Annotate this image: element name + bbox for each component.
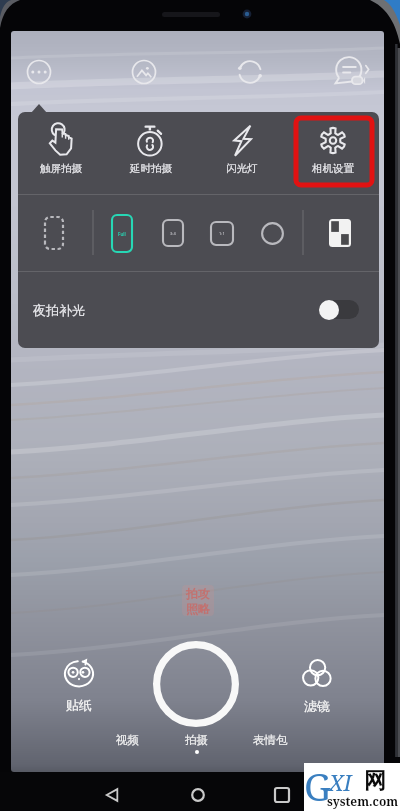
button[interactable]: Wide ratio xyxy=(43,215,65,251)
button[interactable]: 拍摄 xyxy=(162,733,230,761)
staticText: 拍摄 xyxy=(185,733,208,747)
button[interactable]: 表情包 xyxy=(236,733,304,761)
staticText: 贴纸 xyxy=(49,697,109,713)
button[interactable]: 触屏拍摄 xyxy=(25,114,97,188)
button[interactable]: Shutter xyxy=(151,639,241,729)
button[interactable]: Gallery xyxy=(131,59,157,85)
button[interactable]: Recents xyxy=(266,779,298,811)
button[interactable]: 延时拍摄 xyxy=(115,114,187,188)
staticText: 1:1 xyxy=(219,231,225,236)
button[interactable]: Switch camera xyxy=(237,59,263,85)
staticText: 视频 xyxy=(116,733,139,747)
staticText: 照 xyxy=(186,601,198,616)
staticText: 延时拍摄 xyxy=(130,162,172,175)
button[interactable]: 1:1 xyxy=(208,219,236,248)
staticText: 闪光灯 xyxy=(226,162,258,175)
staticText: 攻 xyxy=(198,586,210,601)
button[interactable]: 滤镜 xyxy=(287,651,347,713)
staticText: 拍 xyxy=(186,586,198,601)
staticText: 相机设置 xyxy=(312,162,354,175)
staticText: 网 xyxy=(364,767,386,795)
button[interactable]: Circle ratio xyxy=(258,219,286,247)
staticText: 3:4 xyxy=(170,231,176,236)
staticText: 夜拍补光 xyxy=(33,302,85,318)
button[interactable]: Full xyxy=(109,212,135,255)
button[interactable]: 相机设置 xyxy=(297,114,369,188)
staticText: 表情包 xyxy=(253,733,288,747)
button[interactable]: Back xyxy=(96,779,128,811)
staticText: Full xyxy=(118,231,126,237)
staticText: G xyxy=(304,760,332,808)
staticText: 滤镜 xyxy=(287,698,347,714)
button[interactable]: Effects xyxy=(336,56,368,88)
button[interactable]: More options xyxy=(26,59,52,85)
button[interactable]: Night light toggle xyxy=(317,298,361,321)
button[interactable]: 闪光灯 xyxy=(206,114,278,188)
button[interactable]: 视频 xyxy=(93,733,161,761)
button[interactable]: Collage mode xyxy=(326,217,354,249)
staticText: system.com xyxy=(327,793,399,809)
staticText: XI xyxy=(329,767,352,797)
button[interactable]: 贴纸 xyxy=(49,650,109,712)
button[interactable]: Home xyxy=(182,779,214,811)
staticText: 触屏拍摄 xyxy=(40,162,82,175)
staticText: 略 xyxy=(198,601,210,616)
button[interactable]: 3:4 xyxy=(160,217,186,249)
